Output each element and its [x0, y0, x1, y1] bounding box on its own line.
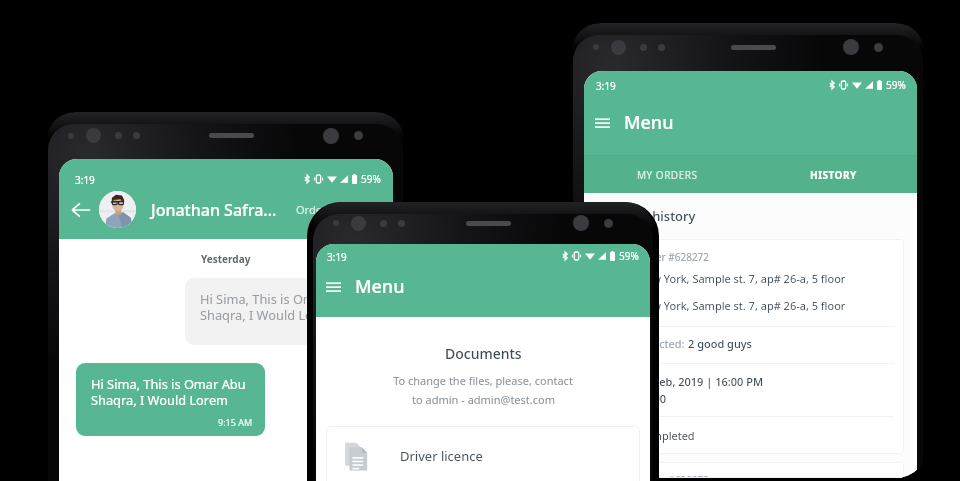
staticText: Jonathan Safra...: [151, 199, 277, 221]
staticText: HISTORY: [810, 168, 857, 182]
button[interactable]: Order #628272: [597, 462, 904, 478]
staticText: Documents: [445, 344, 522, 363]
other: Open navigation menu: [326, 282, 341, 291]
staticText: 23 Feb, 2019 | 16:00 PM: [638, 374, 764, 389]
staticText: 9:15 AM: [218, 416, 253, 428]
staticText: Order #628272: [638, 250, 710, 264]
staticText: 2 good guys: [688, 336, 752, 351]
button[interactable]: MY ORDERS: [584, 156, 750, 193]
button[interactable]: Driver licence: [326, 426, 640, 481]
staticText: MY ORDERS: [637, 168, 698, 182]
staticText: Order #628272: [638, 473, 710, 478]
staticText: Hi Sima, This is Omar Abu Shaqra, I Woul…: [200, 290, 355, 324]
button[interactable]: Open navigation menu: [316, 274, 650, 299]
staticText: To change the files, please, contact: [393, 373, 573, 388]
staticText: Driver licence: [400, 447, 483, 465]
staticText: to admin - admin@test.com: [412, 392, 555, 407]
button[interactable]: HISTORY: [750, 156, 917, 193]
staticText: Selected:: [638, 336, 688, 351]
staticText: Orders history: [606, 207, 696, 225]
staticText: Menu: [624, 110, 674, 135]
staticText: 59%: [619, 249, 639, 263]
staticText: Hi Sima, This is Omar Abu Shaqra, I Woul…: [91, 375, 246, 409]
staticText: 3:19: [327, 250, 347, 264]
button[interactable]: Open navigation menu: [584, 110, 917, 135]
button[interactable]: Back: [70, 199, 92, 221]
staticText: 3:19: [596, 79, 616, 93]
other: Open navigation menu: [595, 118, 610, 127]
staticText: Menu: [355, 274, 405, 299]
staticText: New York, Sample st. 7, ap# 26-a, 5 floo…: [638, 298, 846, 313]
button[interactable]: Order #628272: [597, 239, 904, 454]
staticText: Order: [296, 202, 327, 217]
staticText: 59%: [886, 78, 906, 92]
staticText: 59%: [361, 172, 381, 186]
staticText: New York, Sample st. 7, ap# 26-a, 5 floo…: [638, 271, 846, 286]
staticText: $ 100: [638, 391, 667, 406]
staticText: Yesterday: [201, 252, 251, 266]
staticText: Completed: [638, 428, 695, 443]
staticText: 3:19: [75, 173, 95, 187]
